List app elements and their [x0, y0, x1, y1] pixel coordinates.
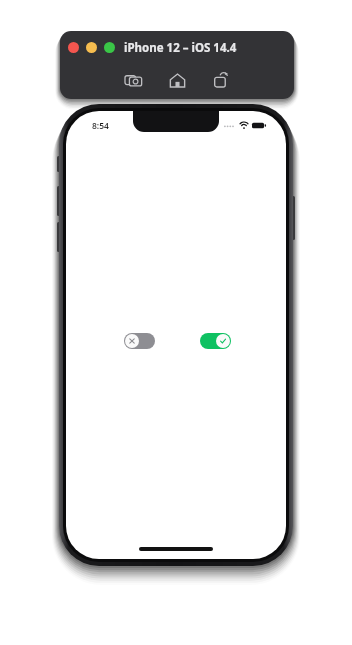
staticText: iPhone 12 – iOS 14.4	[124, 40, 237, 56]
staticText: 8:54	[92, 120, 109, 132]
button[interactable]: Close	[68, 42, 79, 53]
button[interactable]: Switch on	[200, 333, 231, 349]
button[interactable]: Home	[166, 69, 188, 91]
button[interactable]: Maximize	[104, 42, 115, 53]
button[interactable]: Rotate	[210, 69, 232, 91]
button[interactable]: Switch off	[124, 333, 155, 349]
button[interactable]: Screenshot	[122, 69, 144, 91]
button[interactable]: Minimize	[86, 42, 97, 53]
